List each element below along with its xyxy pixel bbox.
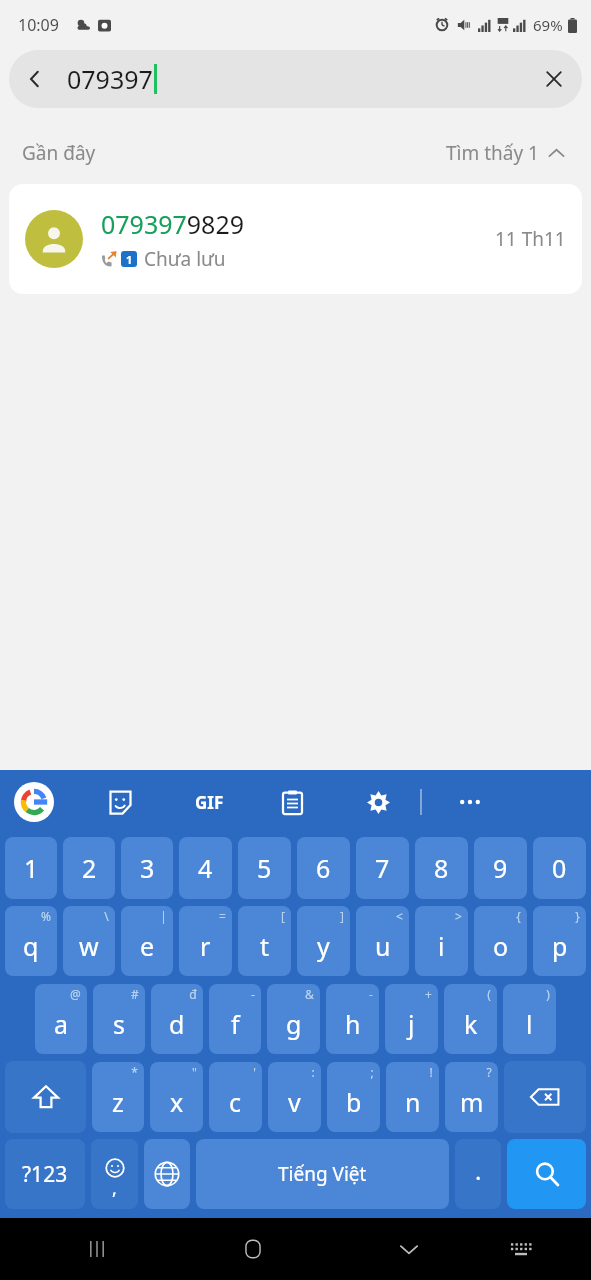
staticText: ] xyxy=(340,908,344,924)
button[interactable]: ( xyxy=(444,984,497,1054)
button[interactable]: : xyxy=(268,1062,321,1132)
staticText: ?123 xyxy=(22,1160,68,1189)
button[interactable]: ˗ xyxy=(326,984,379,1054)
button[interactable]: ! xyxy=(386,1062,439,1132)
button[interactable]: GIF xyxy=(184,780,234,824)
button[interactable]: Back xyxy=(9,53,61,105)
button[interactable]: ; xyxy=(327,1062,380,1132)
button[interactable]: * xyxy=(92,1062,144,1132)
staticText: 3 xyxy=(140,851,155,885)
staticText: " xyxy=(192,1064,197,1080)
staticText: i xyxy=(438,929,445,963)
button[interactable]: Tiếng Việt xyxy=(196,1139,449,1209)
staticText: c xyxy=(229,1085,242,1119)
staticText: 9 xyxy=(493,851,508,885)
button[interactable]: Stickers xyxy=(98,780,142,824)
button[interactable]: ?123 xyxy=(5,1139,85,1209)
button[interactable]: . xyxy=(455,1139,501,1209)
staticText: > xyxy=(455,908,462,924)
staticText: ' xyxy=(253,1064,256,1080)
staticText: h xyxy=(345,1007,361,1041)
staticText: d xyxy=(169,1007,185,1041)
button[interactable]: @ xyxy=(35,984,87,1054)
button[interactable]: 2 xyxy=(63,837,115,899)
button[interactable]: \ xyxy=(63,906,115,976)
staticText: ˗ xyxy=(369,986,373,1002)
button[interactable]: ) xyxy=(503,984,556,1054)
button[interactable]: 9 xyxy=(474,837,527,899)
button[interactable]: < xyxy=(356,906,409,976)
button[interactable]: Recent apps xyxy=(71,1223,123,1275)
button[interactable]: [ xyxy=(238,906,291,976)
button[interactable]: | xyxy=(121,906,173,976)
button[interactable]: 0 xyxy=(533,837,586,899)
button[interactable]: ] xyxy=(297,906,350,976)
button[interactable]: } xyxy=(533,906,586,976)
button[interactable]: Emoji xyxy=(91,1139,138,1209)
button[interactable]: = xyxy=(179,906,232,976)
staticText: * xyxy=(131,1064,138,1080)
button[interactable]: % xyxy=(5,906,57,976)
staticText: w xyxy=(79,929,99,963)
staticText: 69% xyxy=(533,15,563,35)
staticText: - xyxy=(251,986,255,1002)
button[interactable]: 4 xyxy=(179,837,232,899)
button[interactable]: Change language xyxy=(144,1139,190,1209)
button[interactable]: Google xyxy=(12,780,56,824)
button[interactable]: 0793979829 xyxy=(9,184,582,294)
staticText: u xyxy=(375,929,391,963)
button[interactable]: 3 xyxy=(121,837,173,899)
button[interactable]: đ xyxy=(151,984,203,1054)
staticText: s xyxy=(113,1007,125,1041)
staticText: e xyxy=(140,929,155,963)
staticText: Gần đây xyxy=(22,140,96,166)
button[interactable]: Keyboard layout xyxy=(495,1223,547,1275)
staticText: ; xyxy=(370,1064,374,1080)
button[interactable]: Hide keyboard xyxy=(383,1223,435,1275)
button[interactable]: Home xyxy=(227,1223,279,1275)
button[interactable]: 5 xyxy=(238,837,291,899)
staticText: \ xyxy=(104,908,109,924)
staticText: g xyxy=(286,1007,302,1041)
staticText: f xyxy=(231,1007,240,1041)
staticText: + xyxy=(425,986,432,1002)
staticText: 0 xyxy=(552,851,567,885)
staticText: Chưa lưu xyxy=(144,246,226,272)
button[interactable]: Backspace xyxy=(504,1061,586,1133)
button[interactable]: 6 xyxy=(297,837,350,899)
staticText: % xyxy=(41,908,51,924)
button[interactable]: Tìm thấy 1 xyxy=(442,136,569,170)
button[interactable]: { xyxy=(474,906,527,976)
staticText: đ xyxy=(189,986,197,1002)
button[interactable]: + xyxy=(385,984,438,1054)
staticText: { xyxy=(516,908,521,924)
staticText: 5 xyxy=(257,851,272,885)
staticText: ? xyxy=(486,1064,492,1080)
staticText: j xyxy=(408,1007,415,1041)
staticText: < xyxy=(396,908,403,924)
staticText: n xyxy=(405,1085,421,1119)
button[interactable]: ' xyxy=(209,1062,262,1132)
button[interactable]: 8 xyxy=(415,837,468,899)
button[interactable]: Settings xyxy=(356,780,400,824)
staticText: ! xyxy=(429,1064,433,1080)
button[interactable]: 1 xyxy=(5,837,57,899)
button[interactable]: " xyxy=(150,1062,203,1132)
button[interactable]: ? xyxy=(445,1062,498,1132)
staticText: , xyxy=(112,1176,117,1201)
button[interactable]: Clipboard xyxy=(270,780,314,824)
button[interactable]: More xyxy=(448,780,492,824)
staticText: k xyxy=(464,1007,478,1041)
button[interactable]: Search xyxy=(507,1139,586,1209)
button[interactable]: - xyxy=(209,984,261,1054)
button[interactable]: > xyxy=(415,906,468,976)
button[interactable]: Clear xyxy=(526,51,582,107)
button[interactable]: 7 xyxy=(356,837,409,899)
button[interactable]: # xyxy=(93,984,145,1054)
button[interactable]: & xyxy=(267,984,320,1054)
staticText: ( xyxy=(487,986,491,1002)
staticText: @ xyxy=(70,986,81,1002)
staticText: 11 Th11 xyxy=(495,226,566,252)
button[interactable]: Shift xyxy=(5,1061,86,1133)
staticText: 079397 xyxy=(67,62,153,96)
